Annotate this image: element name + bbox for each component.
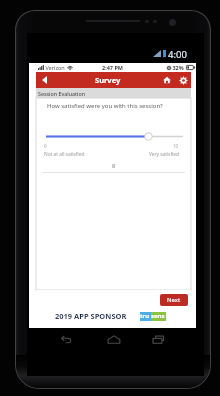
staticText: true — [140, 312, 151, 321]
staticText: 2019 APP SPONSOR — [55, 311, 127, 321]
staticText: sense — [151, 312, 166, 321]
button[interactable]: Back — [56, 328, 76, 350]
staticText: 10 — [173, 143, 179, 149]
staticText: 8 — [112, 162, 116, 169]
staticText: Session Evaluation — [38, 90, 86, 97]
button[interactable]: Home — [104, 328, 124, 350]
staticText: 4:00 — [168, 48, 187, 58]
staticText: 32% — [171, 64, 184, 71]
button[interactable]: Recents — [148, 328, 168, 350]
staticText: Next — [167, 296, 181, 304]
staticText: 0 — [44, 143, 47, 149]
staticText: Survey — [95, 75, 121, 85]
staticText: Very satisfied — [149, 151, 179, 158]
button[interactable]: Back — [36, 72, 52, 88]
staticText: Not at all satisfied — [44, 151, 85, 158]
staticText: Verizon — [44, 64, 65, 71]
staticText: How satisfied were you with this session… — [47, 102, 163, 110]
staticText: 2:47 PM — [102, 64, 124, 71]
button[interactable]: Next — [160, 294, 188, 306]
button[interactable]: Settings — [175, 72, 191, 88]
button[interactable]: Home — [159, 72, 175, 88]
